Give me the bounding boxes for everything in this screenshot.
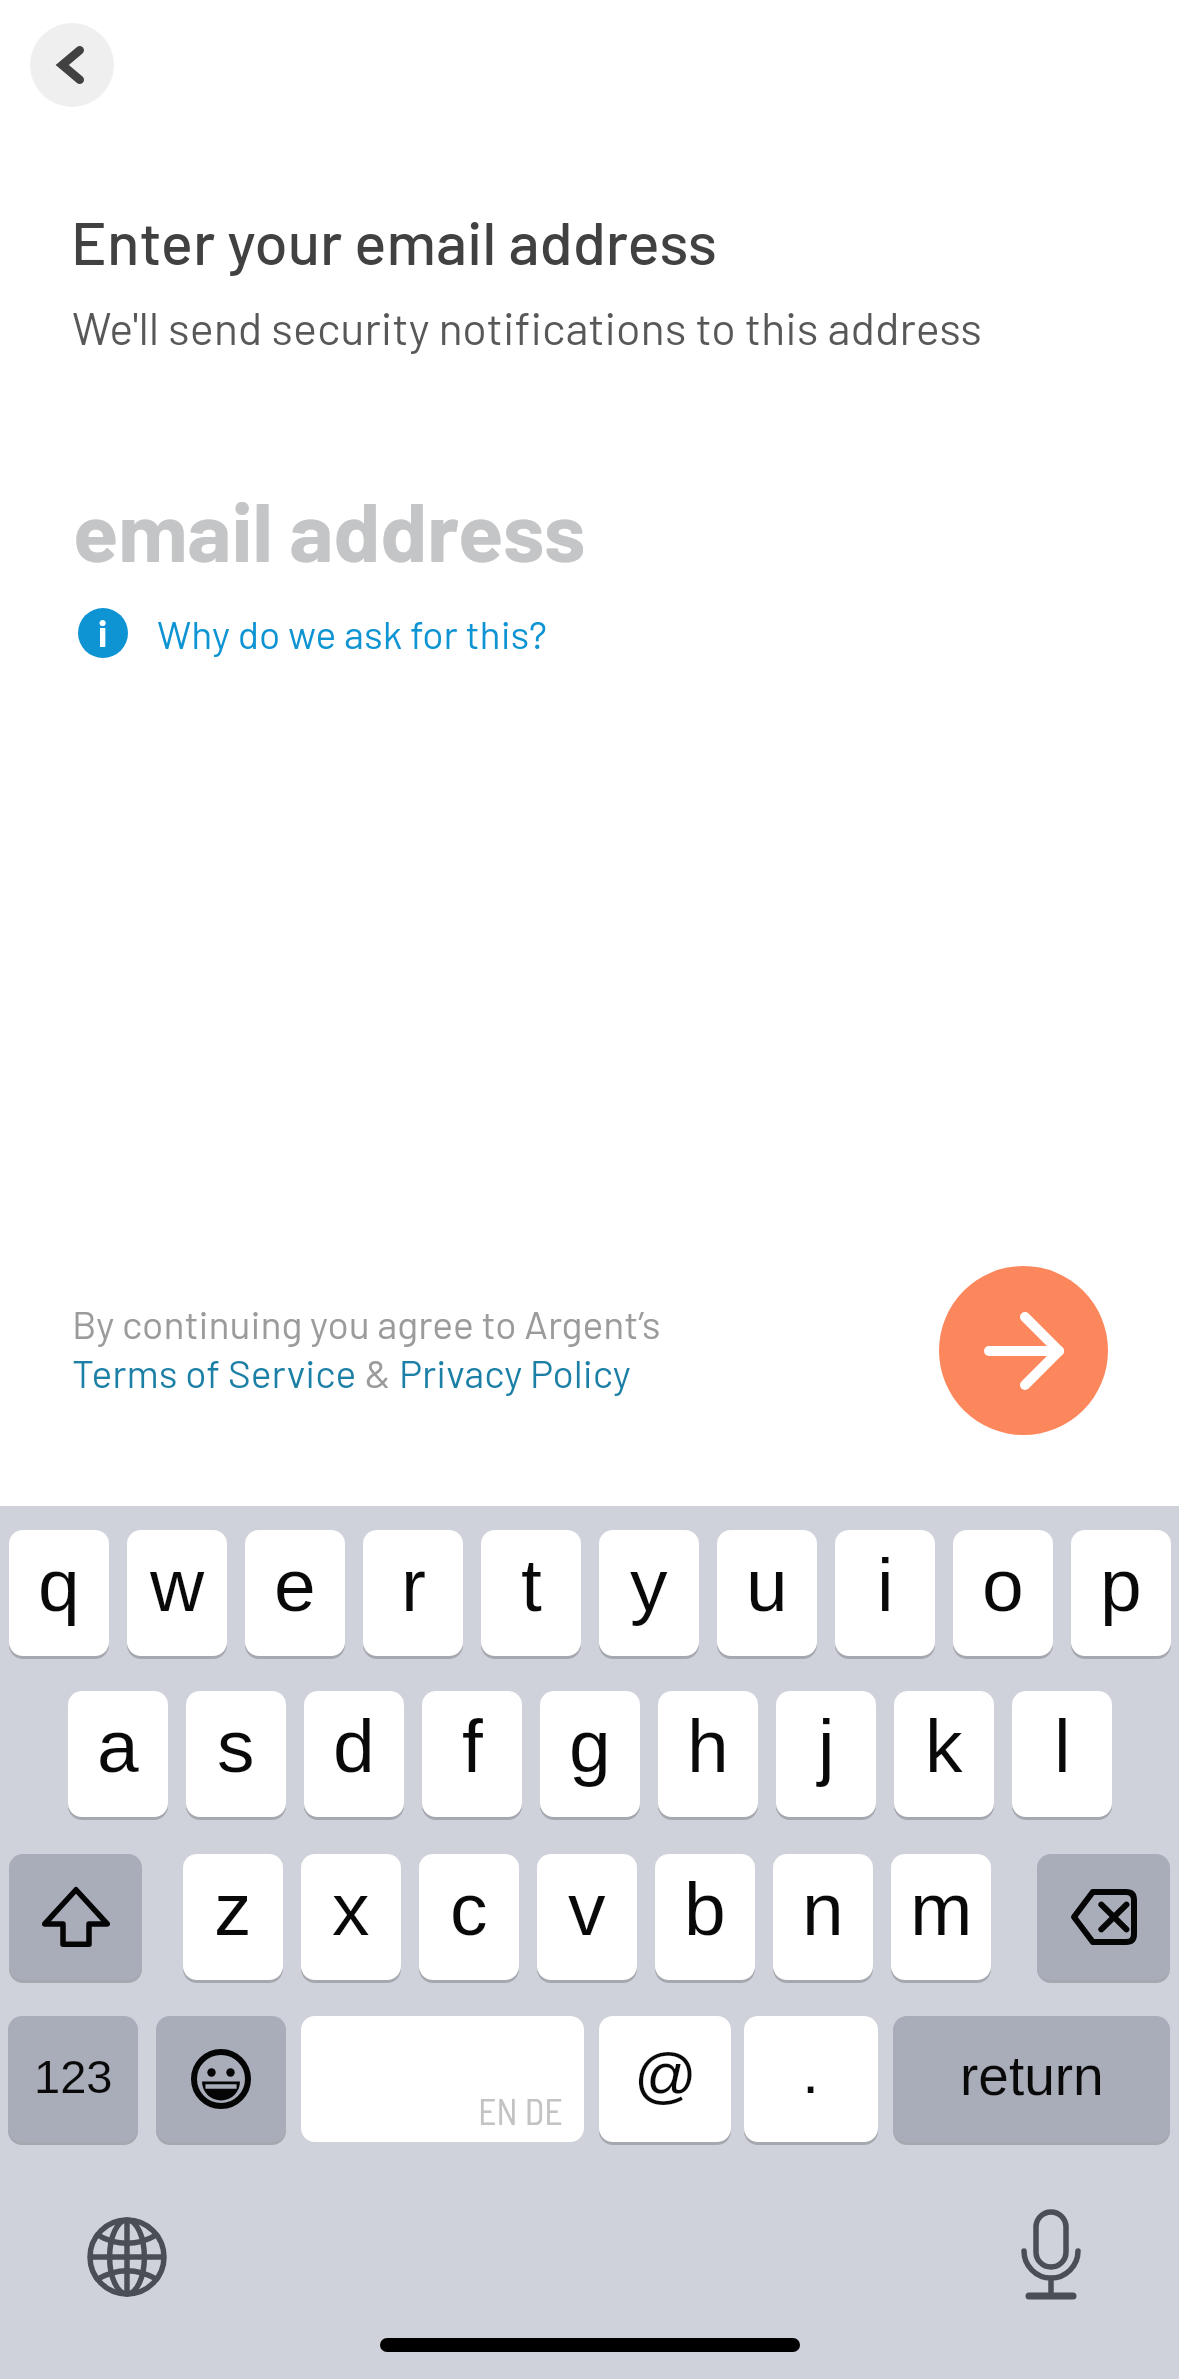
staticText: y xyxy=(630,1543,668,1627)
staticText: z xyxy=(214,1867,252,1951)
button[interactable]: Terms of Service xyxy=(72,1349,357,1396)
button[interactable]: Numbers xyxy=(8,2016,138,2142)
button[interactable]: Continue xyxy=(939,1266,1108,1435)
staticText: h xyxy=(687,1704,729,1788)
button[interactable]: Shift xyxy=(9,1854,142,1980)
button[interactable]: j xyxy=(776,1691,876,1817)
button[interactable]: Emoji xyxy=(156,2016,286,2142)
button[interactable]: Backspace xyxy=(1037,1854,1170,1980)
button[interactable]: h xyxy=(658,1691,758,1817)
staticText: b xyxy=(684,1867,726,1951)
button[interactable]: m xyxy=(891,1854,991,1980)
button[interactable]: s xyxy=(186,1691,286,1817)
staticText: & xyxy=(357,1349,399,1396)
button[interactable]: y xyxy=(599,1530,699,1656)
staticText: q xyxy=(38,1543,80,1627)
staticText: c xyxy=(450,1867,488,1951)
staticText: d xyxy=(333,1704,375,1788)
button[interactable]: p xyxy=(1071,1530,1171,1656)
staticText: p xyxy=(1100,1543,1142,1627)
staticText: e xyxy=(274,1543,316,1627)
staticText: @ xyxy=(634,2040,697,2109)
staticText: n xyxy=(802,1867,844,1951)
button[interactable]: Space xyxy=(301,2016,584,2142)
button[interactable]: g xyxy=(540,1691,640,1817)
staticText: EN DE xyxy=(478,2089,563,2132)
staticText: l xyxy=(1054,1704,1071,1788)
staticText: g xyxy=(569,1704,611,1788)
button[interactable]: l xyxy=(1012,1691,1112,1817)
button[interactable]: i xyxy=(835,1530,935,1656)
staticText: By continuing you agree to Argent’s xyxy=(72,1300,661,1347)
button[interactable]: w xyxy=(127,1530,227,1656)
staticText: Why do we ask for this? xyxy=(157,610,548,657)
button[interactable]: Voice input xyxy=(995,2199,1107,2311)
staticText: i xyxy=(98,611,108,654)
button[interactable]: . xyxy=(744,2016,878,2142)
button[interactable]: e xyxy=(245,1530,345,1656)
staticText: k xyxy=(925,1704,963,1788)
staticText: return xyxy=(960,2045,1104,2106)
staticText: a xyxy=(97,1704,139,1788)
button[interactable]: @ xyxy=(599,2016,731,2142)
button[interactable]: d xyxy=(304,1691,404,1817)
button[interactable]: f xyxy=(422,1691,522,1817)
button[interactable]: b xyxy=(655,1854,755,1980)
staticText: We'll send security notifications to thi… xyxy=(72,300,982,354)
staticText: v xyxy=(568,1867,606,1951)
button[interactable]: c xyxy=(419,1854,519,1980)
staticText: 123 xyxy=(34,2050,113,2103)
staticText: t xyxy=(521,1543,542,1627)
staticText: i xyxy=(877,1543,894,1627)
button[interactable]: r xyxy=(363,1530,463,1656)
button[interactable]: x xyxy=(301,1854,401,1980)
button[interactable]: Back xyxy=(30,23,114,107)
button[interactable]: z xyxy=(183,1854,283,1980)
staticText: j xyxy=(818,1704,835,1788)
staticText: s xyxy=(217,1704,255,1788)
button[interactable]: Privacy Policy xyxy=(399,1349,631,1396)
button[interactable]: Change language xyxy=(71,2201,183,2313)
staticText: u xyxy=(746,1543,788,1627)
staticText: w xyxy=(150,1543,205,1627)
staticText: m xyxy=(910,1867,973,1951)
staticText: Enter your email address xyxy=(71,205,718,277)
staticText: . xyxy=(802,2037,820,2106)
button[interactable]: a xyxy=(68,1691,168,1817)
button[interactable]: t xyxy=(481,1530,581,1656)
button[interactable]: q xyxy=(9,1530,109,1656)
button[interactable]: i xyxy=(75,605,548,661)
button[interactable]: u xyxy=(717,1530,817,1656)
staticText: o xyxy=(982,1543,1024,1627)
button[interactable]: return xyxy=(893,2016,1170,2142)
staticText: email address xyxy=(73,479,586,579)
staticText: f xyxy=(462,1704,483,1788)
button[interactable]: v xyxy=(537,1854,637,1980)
button[interactable]: n xyxy=(773,1854,873,1980)
staticText: x xyxy=(332,1867,370,1951)
staticText: r xyxy=(401,1543,426,1627)
button[interactable]: k xyxy=(894,1691,994,1817)
button[interactable]: o xyxy=(953,1530,1053,1656)
